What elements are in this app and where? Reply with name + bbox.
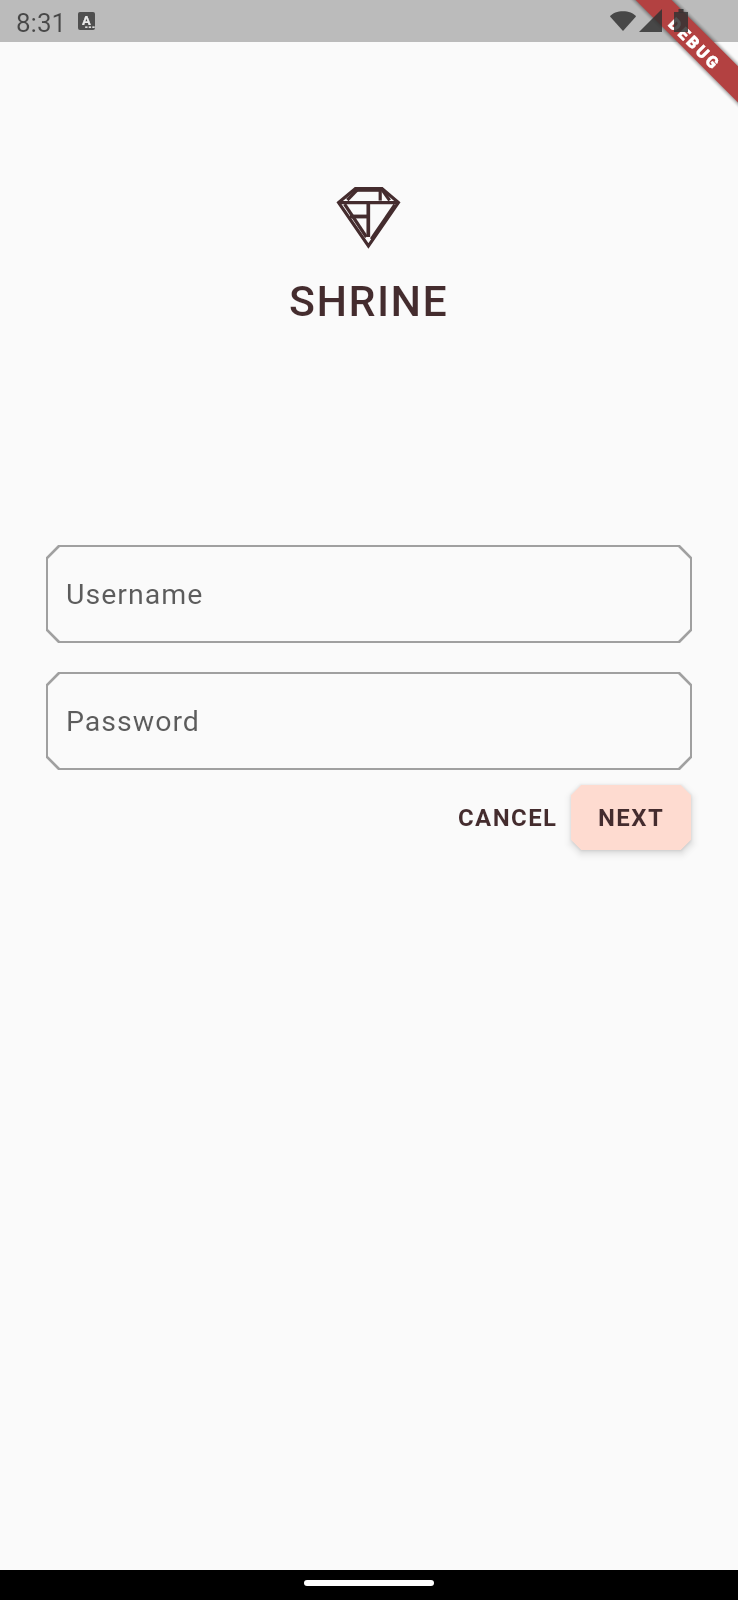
button[interactable]: CANCEL	[441, 786, 569, 850]
staticText: SHRINE	[289, 276, 449, 326]
staticText: Password	[66, 705, 200, 738]
staticText: CANCEL	[458, 804, 558, 832]
button[interactable]: NEXT	[571, 785, 691, 850]
staticText: A	[82, 13, 91, 28]
staticText: Username	[66, 578, 204, 611]
staticText: NEXT	[598, 804, 665, 832]
button[interactable]: Username	[46, 545, 692, 643]
button[interactable]: Password	[46, 672, 692, 770]
staticText: DEBUG	[665, 14, 725, 75]
staticText: 8:31	[16, 8, 67, 38]
